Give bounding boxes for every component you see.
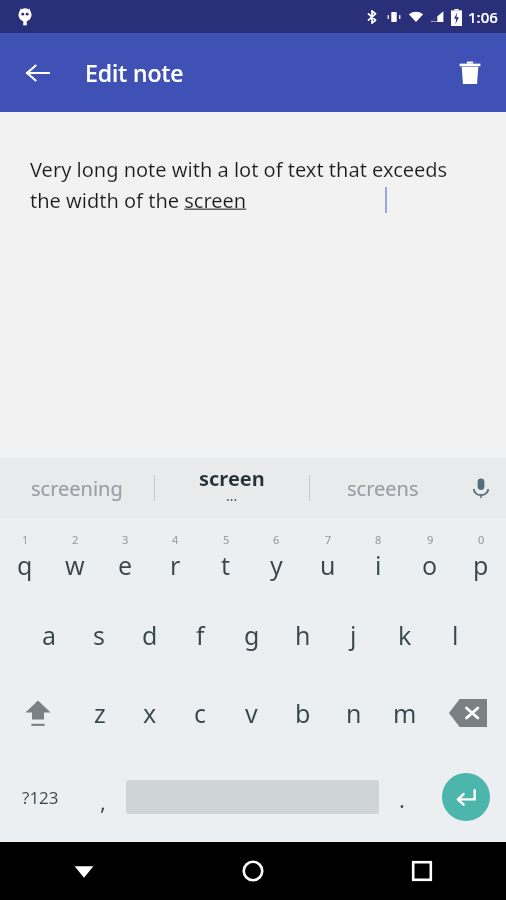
staticText: g <box>244 618 260 652</box>
button[interactable]: f <box>175 596 226 674</box>
button[interactable]: 7 <box>302 518 353 596</box>
button[interactable]: Shift <box>0 674 75 752</box>
staticText: , <box>100 786 106 816</box>
button[interactable]: h <box>277 596 328 674</box>
staticText: q <box>17 548 33 582</box>
button[interactable]: n <box>328 674 379 752</box>
staticText: 8 <box>375 532 382 547</box>
button[interactable]: Space <box>126 752 379 842</box>
button[interactable]: 6 <box>251 518 302 596</box>
staticText: l <box>452 618 459 652</box>
button[interactable]: 5 <box>200 518 251 596</box>
button[interactable]: j <box>328 596 379 674</box>
staticText: b <box>295 696 311 730</box>
staticText: w <box>65 548 85 582</box>
button[interactable]: x <box>125 674 175 752</box>
staticText: 7 <box>325 532 332 547</box>
staticText: m <box>393 696 417 730</box>
button[interactable]: screening <box>0 458 154 518</box>
button[interactable]: 0 <box>455 518 506 596</box>
button[interactable]: l <box>430 596 481 674</box>
staticText: z <box>94 696 106 730</box>
staticText: j <box>350 618 357 652</box>
button[interactable]: screen <box>155 458 309 518</box>
button[interactable]: 2 <box>50 518 100 596</box>
button[interactable]: Back <box>14 49 62 97</box>
staticText: screens <box>347 475 419 502</box>
button[interactable]: 8 <box>353 518 404 596</box>
staticText: s <box>93 618 105 652</box>
staticText: p <box>473 548 489 582</box>
staticText: h <box>295 618 311 652</box>
staticText: 2 <box>72 532 79 547</box>
button[interactable]: s <box>74 596 124 674</box>
staticText: 5 <box>223 532 230 547</box>
staticText: . <box>399 784 405 814</box>
staticText: v <box>245 696 258 730</box>
staticText: o <box>422 548 438 582</box>
button[interactable]: Back <box>0 842 168 900</box>
button[interactable]: Recent apps <box>337 842 506 900</box>
button[interactable]: 4 <box>150 518 200 596</box>
staticText: n <box>346 696 362 730</box>
button[interactable]: Enter <box>425 752 506 842</box>
button[interactable]: a <box>24 596 74 674</box>
staticText: a <box>42 618 57 652</box>
button[interactable]: Backspace <box>430 674 506 752</box>
staticText: screening <box>31 475 123 502</box>
staticText: 0 <box>478 532 485 547</box>
button[interactable]: d <box>124 596 175 674</box>
staticText: ... <box>226 486 238 505</box>
staticText: k <box>398 618 412 652</box>
staticText: y <box>270 548 283 582</box>
staticText: r <box>170 548 181 582</box>
button[interactable]: . <box>379 752 425 842</box>
staticText: i <box>375 548 382 582</box>
staticText: 4 <box>172 532 179 547</box>
button[interactable]: Very long note with a lot of text that e… <box>0 112 506 458</box>
staticText: 3 <box>122 532 129 547</box>
staticText: ?123 <box>22 786 59 809</box>
staticText: 9 <box>427 532 434 547</box>
button[interactable]: Voice input <box>456 458 506 518</box>
staticText: 6 <box>273 532 280 547</box>
staticText: f <box>196 618 205 652</box>
button[interactable]: z <box>75 674 125 752</box>
button[interactable]: v <box>226 674 277 752</box>
staticText: 1 <box>22 532 29 547</box>
staticText: x <box>143 696 157 730</box>
staticText: Very long note with a lot of text that e… <box>30 156 476 213</box>
button[interactable]: , <box>80 752 126 842</box>
button[interactable]: 1 <box>0 518 50 596</box>
button[interactable]: c <box>175 674 226 752</box>
staticText: 1:06 <box>468 7 498 27</box>
button[interactable]: g <box>226 596 277 674</box>
staticText: u <box>320 548 336 582</box>
button[interactable]: 9 <box>404 518 455 596</box>
button[interactable]: k <box>379 596 430 674</box>
button[interactable]: b <box>277 674 328 752</box>
button[interactable]: Home <box>168 842 337 900</box>
staticText: d <box>142 618 158 652</box>
staticText: screen <box>199 465 265 492</box>
button[interactable]: ?123 <box>0 752 80 842</box>
button[interactable]: screens <box>310 458 456 518</box>
staticText: t <box>221 548 231 582</box>
staticText: e <box>118 548 133 582</box>
button[interactable]: Delete <box>446 49 494 97</box>
button[interactable]: m <box>379 674 430 752</box>
staticText: Edit note <box>85 57 184 88</box>
button[interactable]: 3 <box>100 518 150 596</box>
staticText: c <box>194 696 207 730</box>
